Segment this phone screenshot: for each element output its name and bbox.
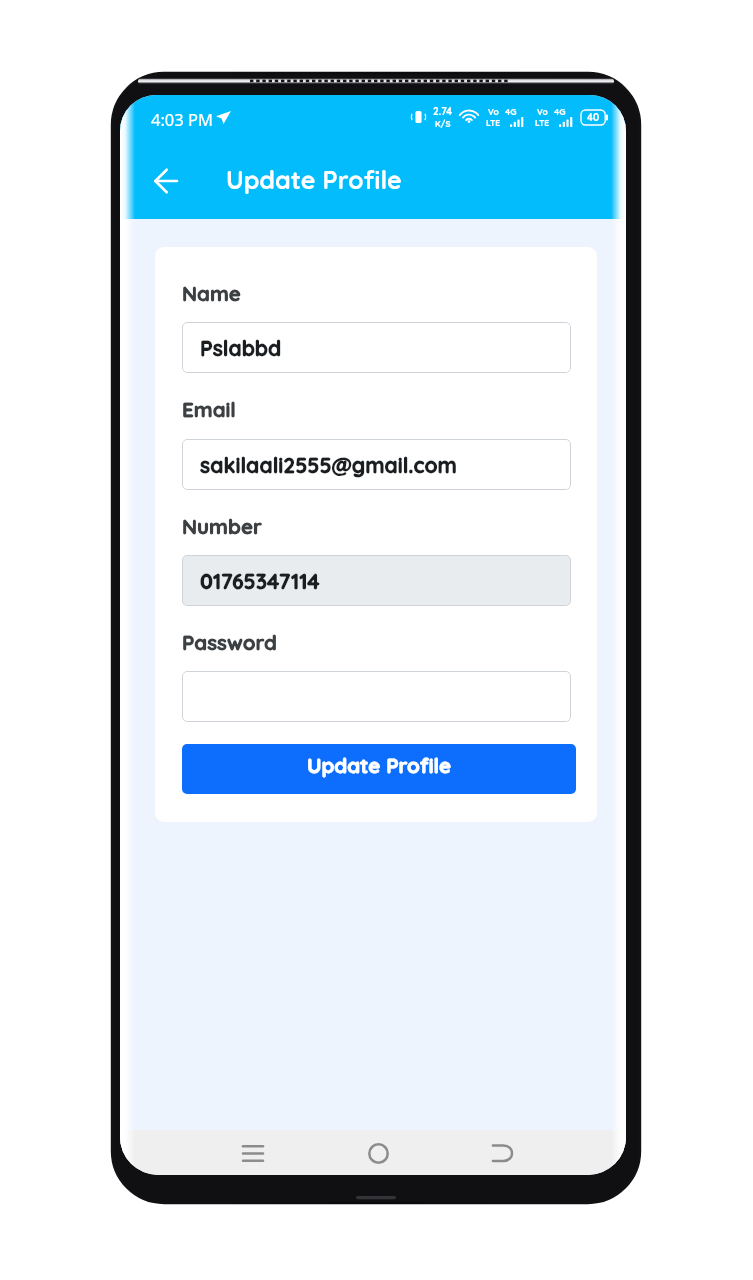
staticText: K/S	[435, 118, 451, 129]
staticText: 40	[587, 111, 600, 124]
staticText: 4:03 PM	[151, 108, 213, 130]
button[interactable]: Pslabbd	[182, 322, 571, 373]
staticText: Password	[182, 629, 277, 655]
staticText: 4G	[554, 106, 566, 117]
staticText: Vo	[537, 106, 548, 117]
button[interactable]: Home	[356, 1131, 400, 1175]
staticText: LTE	[486, 117, 501, 128]
button[interactable]: sakilaali2555@gmail.com	[182, 439, 571, 490]
staticText: 01765347114	[200, 568, 320, 594]
staticText: LTE	[535, 117, 550, 128]
button[interactable]: Back	[481, 1131, 525, 1175]
staticText: Email	[182, 396, 236, 422]
staticText: 2.74	[433, 105, 453, 118]
staticText: Update Profile	[307, 752, 452, 778]
staticText: Vo	[488, 106, 499, 117]
staticText: Number	[182, 513, 262, 539]
staticText: Name	[182, 280, 241, 306]
staticText: 4G	[505, 106, 517, 117]
button[interactable]: 01765347114	[182, 555, 571, 606]
button[interactable]: Back	[143, 158, 189, 204]
staticText: Update Profile	[226, 164, 402, 195]
button[interactable]: Update Profile	[182, 744, 576, 794]
staticText: sakilaali2555@gmail.com	[200, 452, 457, 478]
button[interactable]	[182, 671, 571, 722]
staticText: Pslabbd	[200, 335, 282, 361]
button[interactable]: Recent apps	[231, 1131, 275, 1175]
